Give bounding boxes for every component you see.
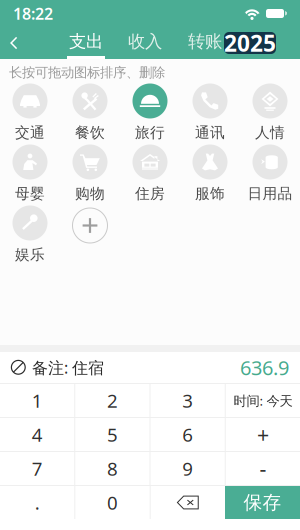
button[interactable]: 转账 bbox=[186, 27, 224, 59]
button[interactable]: 住房 bbox=[120, 147, 180, 208]
staticText: 2025 bbox=[224, 28, 276, 58]
staticText: 人情 bbox=[255, 123, 285, 141]
staticText: 收入 bbox=[128, 31, 162, 52]
staticText: 餐饮 bbox=[75, 123, 105, 141]
button[interactable]: 5 bbox=[75, 418, 149, 451]
button[interactable]: Delete bbox=[151, 486, 225, 519]
button[interactable]: 餐饮 bbox=[60, 86, 120, 147]
button[interactable]: 8 bbox=[75, 452, 149, 485]
button[interactable]: 2 bbox=[75, 384, 149, 417]
staticText: 保存 bbox=[243, 491, 281, 514]
button[interactable]: 人情 bbox=[240, 86, 300, 147]
staticText: 时间: 今天 bbox=[233, 392, 292, 409]
button[interactable]: 3 bbox=[150, 384, 225, 417]
staticText: 8 bbox=[107, 456, 118, 481]
staticText: 转账 bbox=[188, 31, 222, 52]
button[interactable]: 收入 bbox=[126, 27, 164, 59]
staticText: 旅行 bbox=[135, 123, 165, 141]
staticText: 1 bbox=[32, 388, 43, 413]
button[interactable]: 交通 bbox=[0, 86, 60, 147]
staticText: 0 bbox=[107, 490, 118, 515]
staticText: 备注: 住宿 bbox=[32, 357, 104, 378]
staticText: 3 bbox=[182, 388, 193, 413]
staticText: 通讯 bbox=[195, 123, 225, 141]
button[interactable]: 9 bbox=[150, 452, 225, 485]
staticText: 娱乐 bbox=[15, 245, 45, 263]
button[interactable]: Add category bbox=[60, 208, 120, 269]
staticText: 服饰 bbox=[195, 184, 225, 202]
button[interactable]: 6 bbox=[150, 418, 225, 451]
button[interactable]: 1 bbox=[0, 384, 74, 417]
staticText: 9 bbox=[182, 456, 193, 481]
staticText: 支出 bbox=[69, 31, 103, 52]
button[interactable]: Back bbox=[0, 27, 28, 59]
staticText: 日用品 bbox=[247, 184, 292, 202]
button[interactable]: 4 bbox=[0, 418, 74, 451]
staticText: 4 bbox=[32, 422, 43, 447]
button[interactable]: 日用品 bbox=[240, 147, 300, 208]
staticText: 7 bbox=[32, 456, 43, 481]
staticText: 购物 bbox=[75, 184, 105, 202]
button[interactable]: - bbox=[226, 452, 300, 485]
button[interactable]: 时间: 今天 bbox=[226, 384, 300, 417]
staticText: 长按可拖动图标排序、删除 bbox=[9, 64, 165, 81]
button[interactable]: 购物 bbox=[60, 147, 120, 208]
button[interactable]: 通讯 bbox=[180, 86, 240, 147]
button[interactable]: 0 bbox=[75, 486, 150, 519]
button[interactable]: 保存 bbox=[225, 486, 300, 519]
staticText: 636.9 bbox=[240, 354, 289, 381]
button[interactable]: 旅行 bbox=[120, 86, 180, 147]
button[interactable]: . bbox=[0, 486, 74, 519]
staticText: . bbox=[35, 490, 40, 515]
staticText: + bbox=[257, 420, 269, 449]
staticText: 母婴 bbox=[15, 184, 45, 202]
button[interactable]: 服饰 bbox=[180, 147, 240, 208]
button[interactable]: 母婴 bbox=[0, 147, 60, 208]
staticText: 住房 bbox=[135, 184, 165, 202]
button[interactable]: 娱乐 bbox=[0, 208, 60, 269]
button[interactable]: 7 bbox=[0, 452, 74, 485]
button[interactable]: 2025 bbox=[224, 32, 276, 54]
staticText: 18:22 bbox=[13, 3, 53, 24]
staticText: 交通 bbox=[15, 123, 45, 141]
button[interactable]: 支出 bbox=[67, 27, 105, 59]
button[interactable]: + bbox=[226, 418, 300, 451]
staticText: 6 bbox=[182, 422, 193, 447]
button[interactable]: 备注: 住宿 bbox=[0, 352, 300, 383]
staticText: - bbox=[259, 454, 266, 483]
staticText: 2 bbox=[107, 388, 118, 413]
staticText: 5 bbox=[107, 422, 118, 447]
